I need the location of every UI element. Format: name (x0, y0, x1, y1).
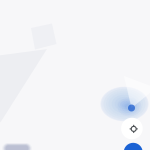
button[interactable]: Directions (124, 143, 143, 150)
button[interactable]: Recenter map (121, 118, 143, 139)
